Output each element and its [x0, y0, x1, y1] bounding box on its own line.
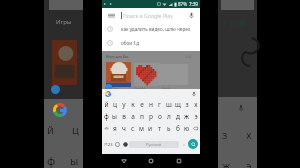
staticText: ц [72, 122, 79, 137]
staticText: ЕЩЁ [230, 19, 246, 29]
staticText: ф [47, 153, 56, 168]
staticText: о [158, 112, 162, 121]
button[interactable]: как удалить видео, шлю через телефон [102, 22, 200, 36]
staticText: ж [184, 112, 189, 121]
button[interactable]: о [155, 110, 164, 122]
button[interactable]: р [146, 110, 155, 122]
staticText: ф [104, 112, 109, 121]
staticText: щ [175, 100, 181, 109]
staticText: ч [122, 124, 126, 133]
button[interactable]: в [119, 110, 128, 122]
staticText: ы [112, 112, 117, 121]
staticText: ?123 [104, 142, 113, 147]
button[interactable]: ж [182, 110, 191, 122]
staticText: й [104, 100, 109, 109]
button[interactable]: Emoji [114, 134, 121, 154]
staticText: й [47, 122, 54, 137]
button[interactable] [179, 134, 188, 154]
button[interactable]: ф [102, 110, 110, 122]
button[interactable]: г [155, 98, 164, 110]
button[interactable]: у [119, 98, 128, 110]
button[interactable]: ы [110, 110, 119, 122]
button[interactable]: Language [121, 134, 129, 154]
other: Voice search [188, 12, 195, 19]
button[interactable]: Shift [102, 122, 110, 134]
button[interactable]: ш [164, 98, 173, 110]
staticText: а [131, 112, 135, 121]
staticText: у [122, 100, 126, 109]
button[interactable]: т [155, 122, 164, 134]
button[interactable]: Menu [102, 8, 200, 22]
staticText: б [176, 124, 180, 133]
staticText: 7:39 [189, 1, 198, 7]
staticText: э [194, 112, 198, 121]
staticText: ЕЩЁ [185, 55, 192, 59]
button[interactable]: с [128, 122, 137, 134]
button[interactable]: я [110, 122, 119, 134]
staticText: Игры [56, 18, 72, 26]
button[interactable]: э [191, 110, 200, 122]
button[interactable]: е [137, 98, 146, 110]
staticText: л [167, 112, 171, 121]
button[interactable]: б [173, 122, 182, 134]
staticText: з [222, 127, 228, 142]
button[interactable]: ц [110, 98, 119, 110]
staticText: как удалить видео, шлю через телефон [121, 26, 199, 32]
button[interactable]: Recents [173, 155, 185, 167]
staticText: г [158, 100, 161, 109]
staticText: Sky Fo… [162, 87, 188, 91]
staticText: к [131, 100, 135, 109]
staticText: р [149, 112, 153, 121]
button[interactable]: Search [188, 139, 198, 149]
button[interactable]: а [128, 110, 137, 122]
staticText: с [131, 124, 135, 133]
staticText: ш [166, 100, 172, 109]
button[interactable]: к [128, 98, 137, 110]
button[interactable]: д [173, 110, 182, 122]
button[interactable]: й [102, 98, 110, 110]
button[interactable]: м [137, 122, 146, 134]
staticText: д [176, 112, 180, 121]
staticText: х [246, 127, 252, 142]
staticText: м [139, 124, 144, 133]
staticText: ц [113, 100, 117, 109]
button[interactable]: л [164, 110, 173, 122]
staticText: в [122, 112, 126, 121]
staticText: э [246, 158, 252, 168]
button[interactable]: Backspace [191, 122, 200, 134]
button[interactable]: ь [164, 122, 173, 134]
other: Menu [108, 12, 115, 19]
button[interactable]: обои f.д [102, 36, 200, 50]
staticText: обои f.д [121, 40, 140, 46]
staticText: п [140, 112, 144, 121]
button[interactable]: н [146, 98, 155, 110]
staticText: ю [184, 124, 190, 133]
button[interactable]: щ [173, 98, 182, 110]
button[interactable]: Back [118, 155, 130, 167]
staticText: н [149, 100, 153, 109]
button[interactable]: з [182, 98, 191, 110]
button[interactable] [106, 62, 131, 87]
staticText: Русский [146, 142, 162, 147]
staticText: Поиск в Google Play [123, 12, 173, 19]
staticText: е [140, 100, 144, 109]
button[interactable] [134, 63, 160, 86]
button[interactable]: ч [119, 122, 128, 134]
button[interactable]: х [191, 98, 200, 110]
staticText: 87% [178, 1, 187, 7]
button[interactable]: ю [182, 122, 191, 134]
staticText: х [194, 100, 198, 109]
button[interactable]: п [137, 110, 146, 122]
button[interactable]: Home [145, 155, 157, 167]
other: Google [105, 91, 111, 97]
staticText: з [185, 100, 189, 109]
staticText: т [158, 124, 162, 133]
staticText: Pixel Art… [134, 87, 160, 91]
other: Voice input [191, 91, 197, 97]
button[interactable]: Русский [129, 141, 179, 148]
staticText: ж [222, 158, 231, 168]
button[interactable]: и [146, 122, 155, 134]
button[interactable]: ?123 [103, 134, 114, 154]
staticText: ы [70, 153, 79, 168]
